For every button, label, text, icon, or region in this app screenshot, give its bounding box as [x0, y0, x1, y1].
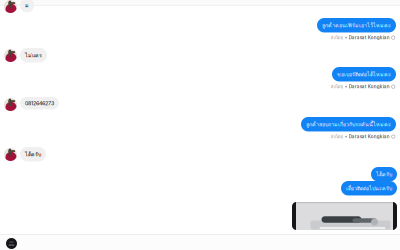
- staticText: ส่งโดย: [330, 34, 343, 41]
- button[interactable]: ได้ครับ: [371, 167, 397, 181]
- staticText: Darasat Kongkian: [349, 35, 390, 40]
- button[interactable]: ลูกค้าคอนเฟิร์มเอาไว้ไหมคะ: [317, 18, 396, 32]
- staticText: ส่งโดย: [330, 83, 343, 90]
- button[interactable]: ไม่แคร: [20, 48, 47, 62]
- staticText: Darasat Kongkian: [349, 84, 390, 89]
- button[interactable]: ลูกค้าสอบถามเกี่ยวกับรถคันนี้ไหมคะ: [301, 117, 396, 131]
- button[interactable]: เดี๋ยวติดต่อไปนะครับ: [341, 181, 397, 195]
- staticText: เดี๋ยวติดต่อไปนะครับ: [346, 184, 392, 192]
- staticText: ม: [25, 1, 29, 9]
- staticText: Darasat Kongkian: [349, 134, 390, 139]
- button[interactable]: ม: [20, 0, 34, 12]
- staticText: ลูกค้าสอบถามเกี่ยวกับรถคันนี้ไหมคะ: [306, 120, 391, 128]
- staticText: ส่งโดย: [330, 133, 343, 140]
- button[interactable]: ขอเบอร์ติดต่อได้ไหมคะ: [332, 67, 396, 81]
- staticText: 0812646273: [25, 100, 54, 106]
- button[interactable]: ได้ครับ: [20, 147, 46, 161]
- staticText: ได้ครับ: [376, 170, 392, 178]
- staticText: ได้ครับ: [25, 150, 41, 158]
- button[interactable]: Add media: [6, 238, 17, 249]
- staticText: ขอเบอร์ติดต่อได้ไหมคะ: [337, 70, 391, 78]
- button[interactable]: 0812646273: [20, 97, 59, 109]
- staticText: ลูกค้าคอนเฟิร์มเอาไว้ไหมคะ: [322, 21, 391, 29]
- staticText: ไม่แคร: [25, 51, 42, 59]
